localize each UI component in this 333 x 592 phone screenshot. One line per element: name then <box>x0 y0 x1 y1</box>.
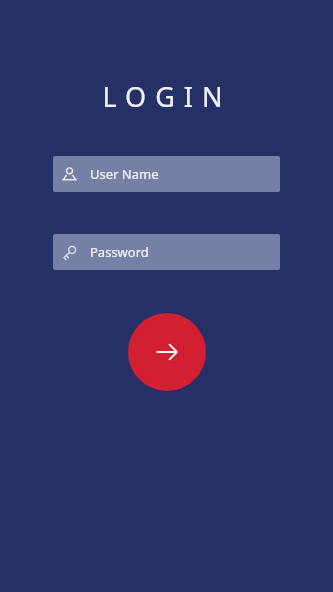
button[interactable]: User Name <box>53 156 280 192</box>
button[interactable]: Sign in <box>128 313 206 391</box>
button[interactable]: Password <box>53 234 280 270</box>
staticText: LOGIN <box>102 78 232 115</box>
staticText: Password <box>90 243 149 261</box>
staticText: User Name <box>90 165 159 183</box>
